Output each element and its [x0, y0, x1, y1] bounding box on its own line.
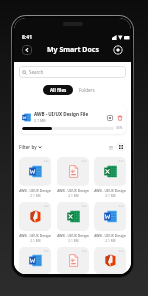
staticText: AWB - UI/UX Design File — [94, 233, 126, 238]
button[interactable]: Folders — [72, 85, 101, 95]
staticText: 2.1 MB — [68, 239, 79, 243]
staticText: 2.1 MB — [105, 194, 116, 198]
button[interactable]: AWB - UI/UX Design File — [19, 202, 51, 243]
staticText: 2.1 MB — [68, 194, 79, 198]
button[interactable]: AWB - UI/UX Design File — [57, 202, 89, 243]
staticText: 8:41 — [22, 34, 32, 40]
staticText: Folders — [79, 87, 95, 93]
staticText: AWB - UI/UX Design File — [94, 188, 126, 193]
button[interactable]: AWB - UI/UX Design File — [94, 157, 126, 198]
staticText: All files — [50, 87, 67, 93]
staticText: 2.1 MB — [34, 118, 46, 123]
staticText: Search — [29, 69, 44, 75]
staticText: AWB - UI/UX Design File — [19, 233, 51, 238]
button[interactable]: Grid view — [116, 143, 126, 151]
button[interactable]: Scan — [113, 45, 123, 55]
staticText: 2.1 MB — [105, 239, 116, 243]
button[interactable]: Back — [22, 45, 32, 55]
staticText: AWB - UI/UX Design File — [57, 233, 89, 238]
button[interactable]: List view — [107, 143, 114, 152]
staticText: 2.1 MB — [30, 194, 41, 198]
staticText: AWB - UI/UX Design File — [57, 188, 89, 193]
staticText: 2.1 MB — [30, 239, 41, 243]
button[interactable]: Stop — [106, 114, 113, 121]
button[interactable]: AWB - UI/UX Design File — [19, 157, 51, 198]
staticText: My Smart Docs — [47, 45, 99, 55]
button[interactable]: AWB - UI/UX Design File — [19, 247, 51, 274]
button[interactable]: AWB - UI/UX Design File — [94, 247, 126, 274]
staticText: AWB - UI/UX Design File — [19, 188, 51, 193]
button[interactable]: Filter by — [19, 144, 42, 150]
staticText: 33% — [116, 126, 123, 130]
staticText: AWB - UI/UX Design File — [34, 111, 89, 117]
button[interactable]: AWB - UI/UX Design File — [57, 157, 89, 198]
staticText: Filter by — [19, 144, 37, 150]
button[interactable]: Delete — [116, 114, 123, 121]
button[interactable]: AWB - UI/UX Design File — [19, 104, 126, 134]
button[interactable]: AWB - UI/UX Design File — [57, 247, 89, 274]
button[interactable]: AWB - UI/UX Design File — [94, 202, 126, 243]
button[interactable]: All files — [43, 85, 73, 95]
button[interactable]: Search — [19, 66, 126, 78]
